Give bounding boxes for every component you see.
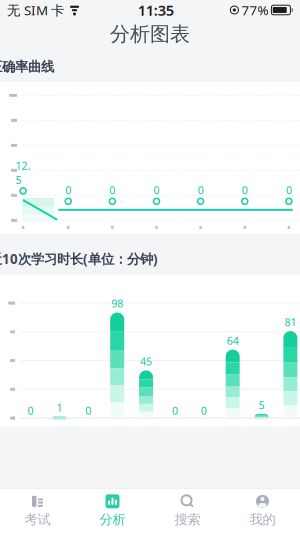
staticText: 0 (109, 183, 115, 197)
staticText: 77% (241, 1, 268, 19)
staticText: 81 (284, 315, 296, 329)
staticText: 分析 (99, 511, 125, 528)
staticText: 考试 (24, 511, 50, 528)
staticText: 0 (242, 183, 248, 197)
staticText: 0 (201, 403, 207, 418)
staticText: 5 (258, 398, 264, 412)
staticText: 11:35 (138, 0, 174, 20)
staticText: 0 (85, 403, 91, 418)
staticText: 64 (227, 333, 239, 348)
staticText: 我的 (249, 511, 275, 528)
staticText: 搜索 (174, 511, 200, 528)
staticText: 0 (172, 403, 178, 418)
staticText: 0 (28, 403, 34, 418)
button[interactable]: 我的 (225, 489, 300, 533)
staticText: 无 SIM 卡 (7, 1, 64, 19)
staticText: 12.5 (16, 158, 31, 187)
staticText: 正确率曲线 (0, 58, 54, 75)
staticText: 98 (111, 296, 123, 310)
staticText: 分析图表 (110, 22, 190, 46)
staticText: 0 (153, 183, 159, 197)
staticText: 0 (198, 183, 204, 197)
staticText: 近10次学习时长(单位：分钟) (0, 250, 158, 268)
button[interactable]: 分析 (75, 489, 150, 533)
button[interactable]: 搜索 (150, 489, 225, 533)
staticText: 45 (140, 354, 152, 368)
button[interactable]: 考试 (0, 489, 75, 533)
staticText: 0 (286, 183, 292, 197)
staticText: 1 (56, 400, 62, 415)
staticText: 0 (65, 183, 71, 197)
